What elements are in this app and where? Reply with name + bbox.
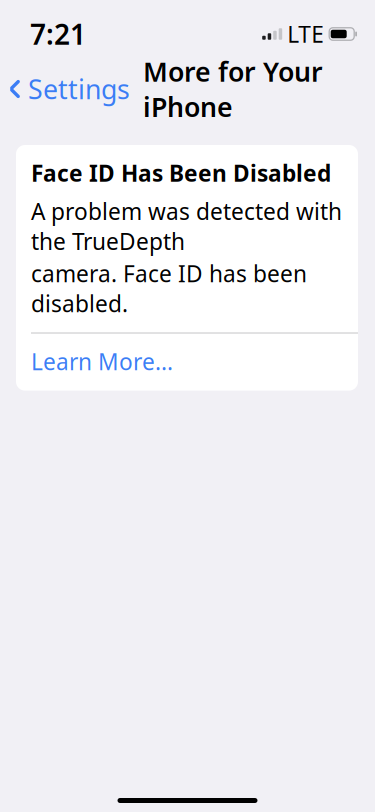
- staticText: More for Your iPhone: [143, 54, 323, 124]
- staticText: Settings: [28, 71, 130, 107]
- staticText: camera. Face ID has been disabled.: [31, 258, 307, 318]
- staticText: 7:21: [30, 15, 86, 53]
- button[interactable]: Learn More...: [16, 333, 358, 391]
- staticText: LTE: [287, 19, 324, 49]
- staticText: Face ID Has Been Disabled: [31, 158, 331, 188]
- button[interactable]: Settings: [0, 65, 134, 113]
- staticText: A problem was detected with the TrueDept…: [31, 196, 342, 256]
- staticText: Learn More...: [31, 346, 173, 377]
